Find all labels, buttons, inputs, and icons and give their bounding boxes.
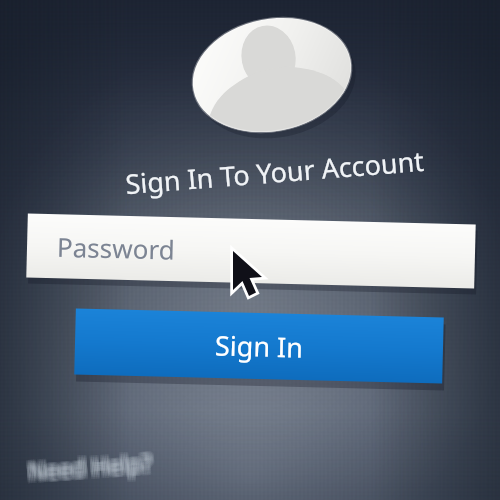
button[interactable]: Sign In <box>75 313 443 379</box>
button[interactable]: Need Help <box>24 448 164 484</box>
button[interactable]: Password field <box>27 218 475 284</box>
button[interactable]: Account avatar <box>192 19 352 131</box>
